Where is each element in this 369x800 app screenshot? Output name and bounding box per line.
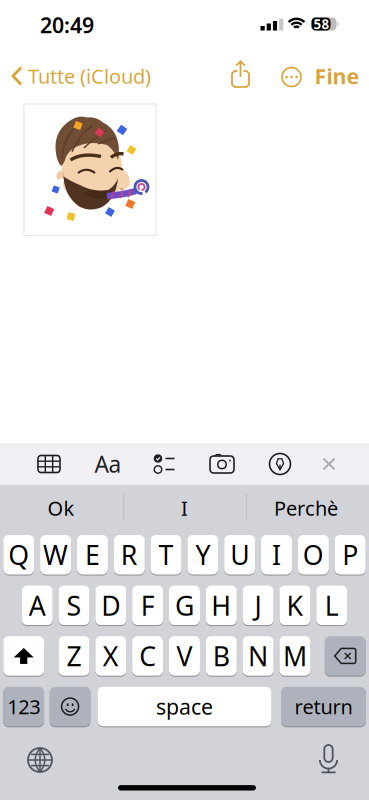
- staticText: Perchè: [274, 495, 338, 521]
- button[interactable]: I: [125, 487, 243, 529]
- button[interactable]: S: [58, 586, 89, 625]
- button[interactable]: D: [95, 586, 126, 625]
- button[interactable]: Perchè: [247, 487, 365, 529]
- staticText: 20:49: [40, 11, 94, 39]
- button[interactable]: K: [279, 586, 310, 625]
- button[interactable]: A: [22, 586, 53, 625]
- button[interactable]: H: [206, 586, 237, 625]
- staticText: M: [283, 638, 307, 674]
- staticText: I: [272, 537, 281, 572]
- button[interactable]: Fine: [314, 62, 359, 90]
- button[interactable]: [153, 454, 174, 474]
- staticText: U: [230, 537, 249, 572]
- button[interactable]: [322, 457, 335, 470]
- button[interactable]: space: [97, 687, 271, 726]
- button[interactable]: W: [40, 535, 71, 574]
- button[interactable]: Aa: [94, 449, 121, 479]
- staticText: D: [101, 588, 120, 623]
- staticText: Tutte (iCloud): [28, 63, 151, 89]
- staticText: Aa: [94, 449, 121, 479]
- button[interactable]: N: [243, 636, 274, 676]
- button[interactable]: U: [224, 535, 255, 574]
- button[interactable]: [37, 454, 61, 474]
- staticText: T: [159, 537, 174, 572]
- button[interactable]: [325, 636, 366, 676]
- button[interactable]: V: [169, 636, 200, 676]
- button[interactable]: I: [261, 535, 292, 574]
- staticText: G: [175, 588, 194, 623]
- button[interactable]: [27, 747, 53, 773]
- button[interactable]: C: [132, 636, 163, 676]
- button[interactable]: F: [132, 586, 163, 625]
- staticText: F: [141, 588, 155, 623]
- button[interactable]: O: [298, 535, 329, 574]
- button[interactable]: E: [77, 535, 108, 574]
- staticText: S: [66, 588, 81, 623]
- button[interactable]: Ok: [2, 487, 120, 529]
- staticText: B: [213, 638, 230, 674]
- staticText: H: [211, 588, 231, 623]
- button[interactable]: Q: [3, 535, 34, 574]
- button[interactable]: [231, 60, 250, 88]
- button[interactable]: Tutte (iCloud): [11, 64, 181, 88]
- staticText: V: [176, 638, 192, 674]
- button[interactable]: G: [169, 586, 200, 625]
- staticText: return: [294, 693, 352, 720]
- staticText: I: [181, 495, 188, 521]
- staticText: 58: [313, 15, 329, 33]
- button[interactable]: M: [279, 636, 310, 676]
- button[interactable]: [209, 454, 234, 474]
- button[interactable]: T: [151, 535, 182, 574]
- staticText: 123: [7, 693, 40, 720]
- staticText: W: [43, 537, 68, 572]
- staticText: space: [156, 692, 213, 721]
- staticText: X: [103, 638, 119, 674]
- staticText: Z: [66, 638, 81, 674]
- staticText: C: [139, 638, 156, 674]
- button[interactable]: B: [206, 636, 237, 676]
- button[interactable]: [3, 636, 44, 676]
- button[interactable]: 123: [3, 687, 44, 726]
- staticText: Y: [195, 537, 210, 572]
- staticText: J: [255, 588, 262, 623]
- staticText: L: [325, 588, 339, 623]
- staticText: N: [248, 638, 268, 674]
- staticText: Q: [8, 537, 29, 572]
- button[interactable]: L: [316, 586, 347, 625]
- button[interactable]: P: [335, 535, 366, 574]
- staticText: K: [286, 588, 303, 623]
- staticText: R: [121, 537, 138, 572]
- button[interactable]: [281, 66, 302, 87]
- button[interactable]: R: [114, 535, 145, 574]
- staticText: P: [342, 537, 358, 572]
- button[interactable]: Z: [58, 636, 89, 676]
- staticText: E: [85, 537, 100, 572]
- staticText: O: [303, 537, 324, 572]
- button[interactable]: [269, 453, 291, 475]
- button[interactable]: [0, 0, 369, 800]
- button[interactable]: [50, 687, 90, 726]
- button[interactable]: return: [281, 687, 366, 726]
- button[interactable]: Y: [187, 535, 218, 574]
- button[interactable]: X: [95, 636, 126, 676]
- button[interactable]: J: [243, 586, 274, 625]
- button[interactable]: [315, 744, 341, 774]
- staticText: Fine: [314, 62, 359, 90]
- staticText: A: [29, 588, 46, 623]
- staticText: Ok: [47, 495, 74, 521]
